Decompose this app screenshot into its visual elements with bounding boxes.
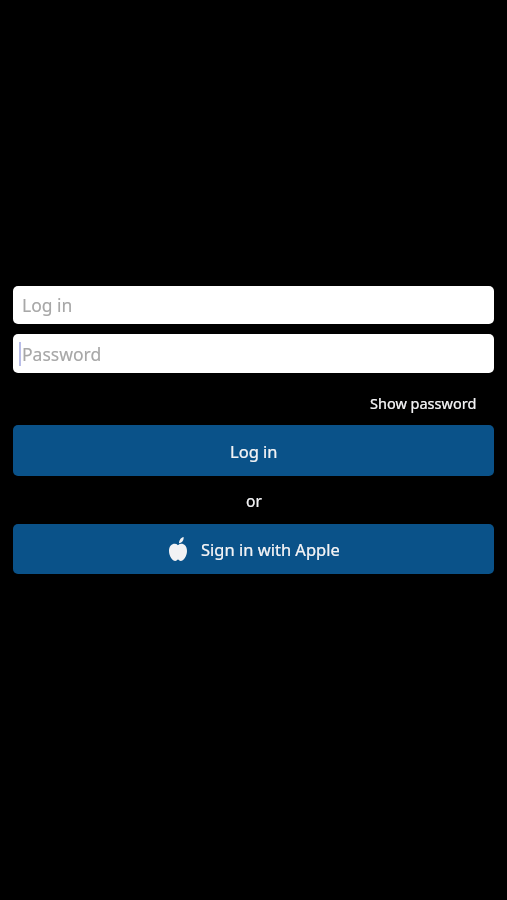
- staticText: Log in: [22, 293, 73, 317]
- other: Apple logo: [168, 537, 188, 561]
- button[interactable]: Log in: [13, 425, 494, 476]
- button[interactable]: Show password: [340, 390, 507, 416]
- staticText: Sign in with Apple: [201, 538, 340, 560]
- button[interactable]: Password: [13, 334, 494, 373]
- staticText: Password: [22, 342, 102, 366]
- staticText: Show password: [370, 393, 477, 413]
- staticText: Log in: [230, 440, 278, 462]
- button[interactable]: Log in: [13, 286, 494, 324]
- button[interactable]: Apple logo: [13, 524, 494, 574]
- staticText: or: [246, 490, 262, 511]
